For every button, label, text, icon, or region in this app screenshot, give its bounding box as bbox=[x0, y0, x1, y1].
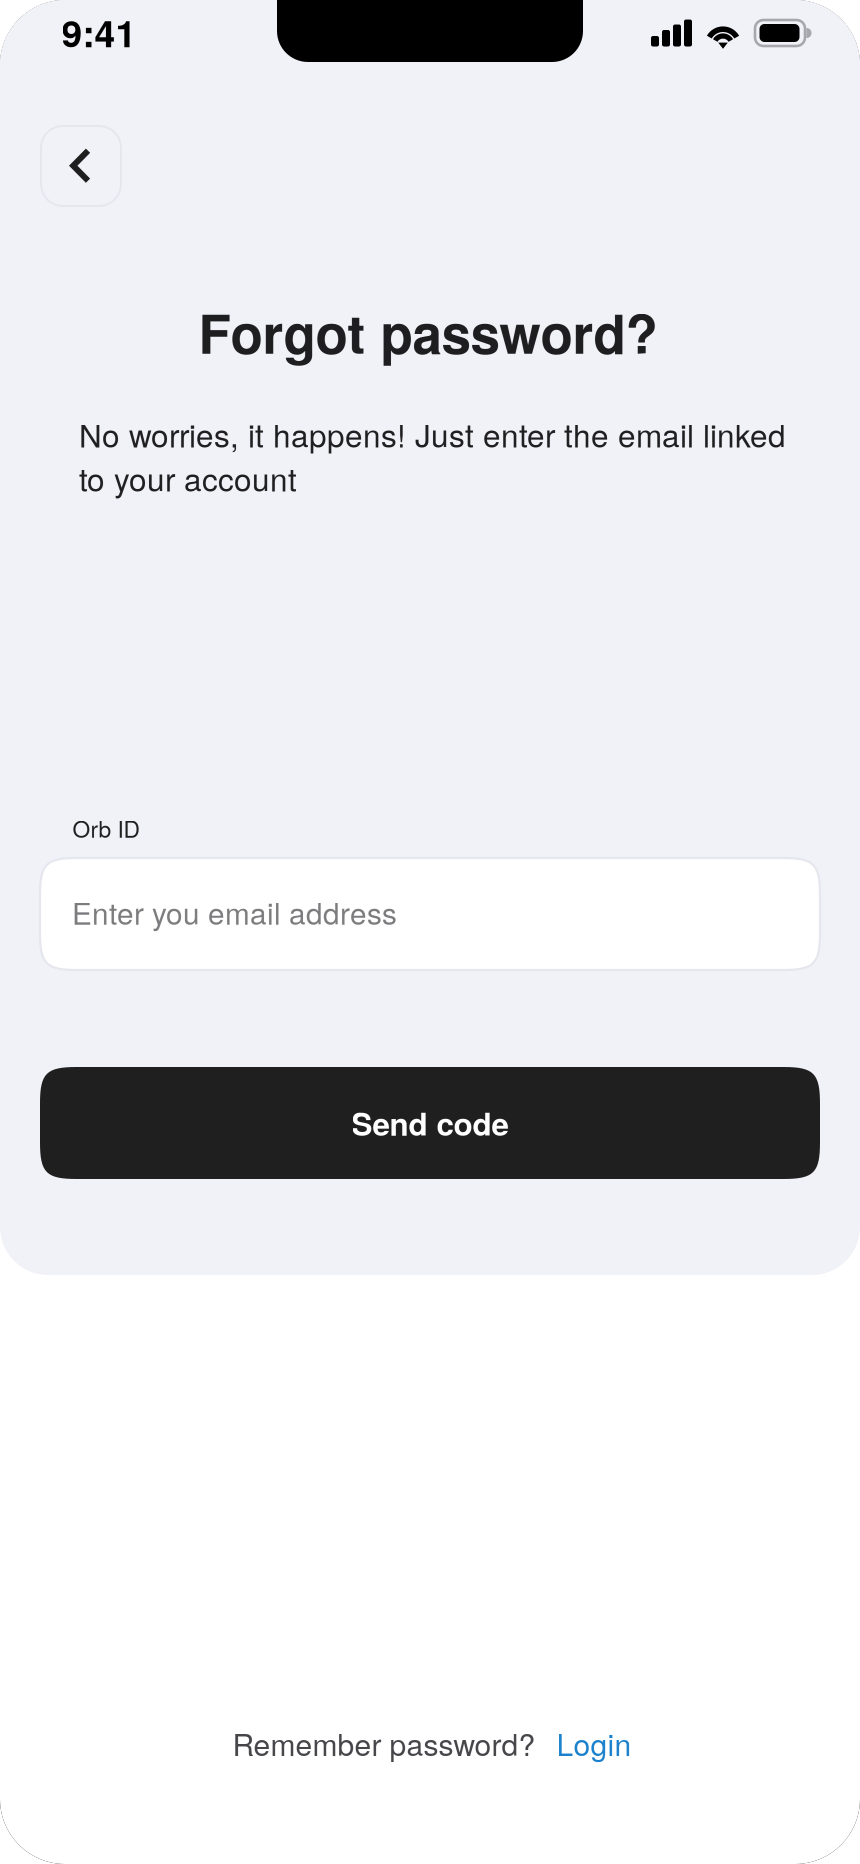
staticText: Forgot password? bbox=[198, 294, 657, 370]
staticText: 9:41 bbox=[61, 5, 136, 59]
staticText: Login bbox=[556, 1722, 631, 1764]
staticText: Remember password? bbox=[232, 1722, 535, 1764]
staticText: Orb ID bbox=[72, 812, 139, 844]
button[interactable]: Send code bbox=[40, 1067, 820, 1179]
staticText: Enter you email address bbox=[72, 891, 397, 933]
button[interactable]: Remember password? bbox=[232, 1722, 631, 1764]
staticText: Send code bbox=[351, 1100, 508, 1145]
button[interactable]: Back bbox=[41, 126, 121, 206]
staticText: No worries, it happens! Just enter the e… bbox=[79, 411, 786, 457]
staticText: to your account bbox=[79, 455, 297, 501]
